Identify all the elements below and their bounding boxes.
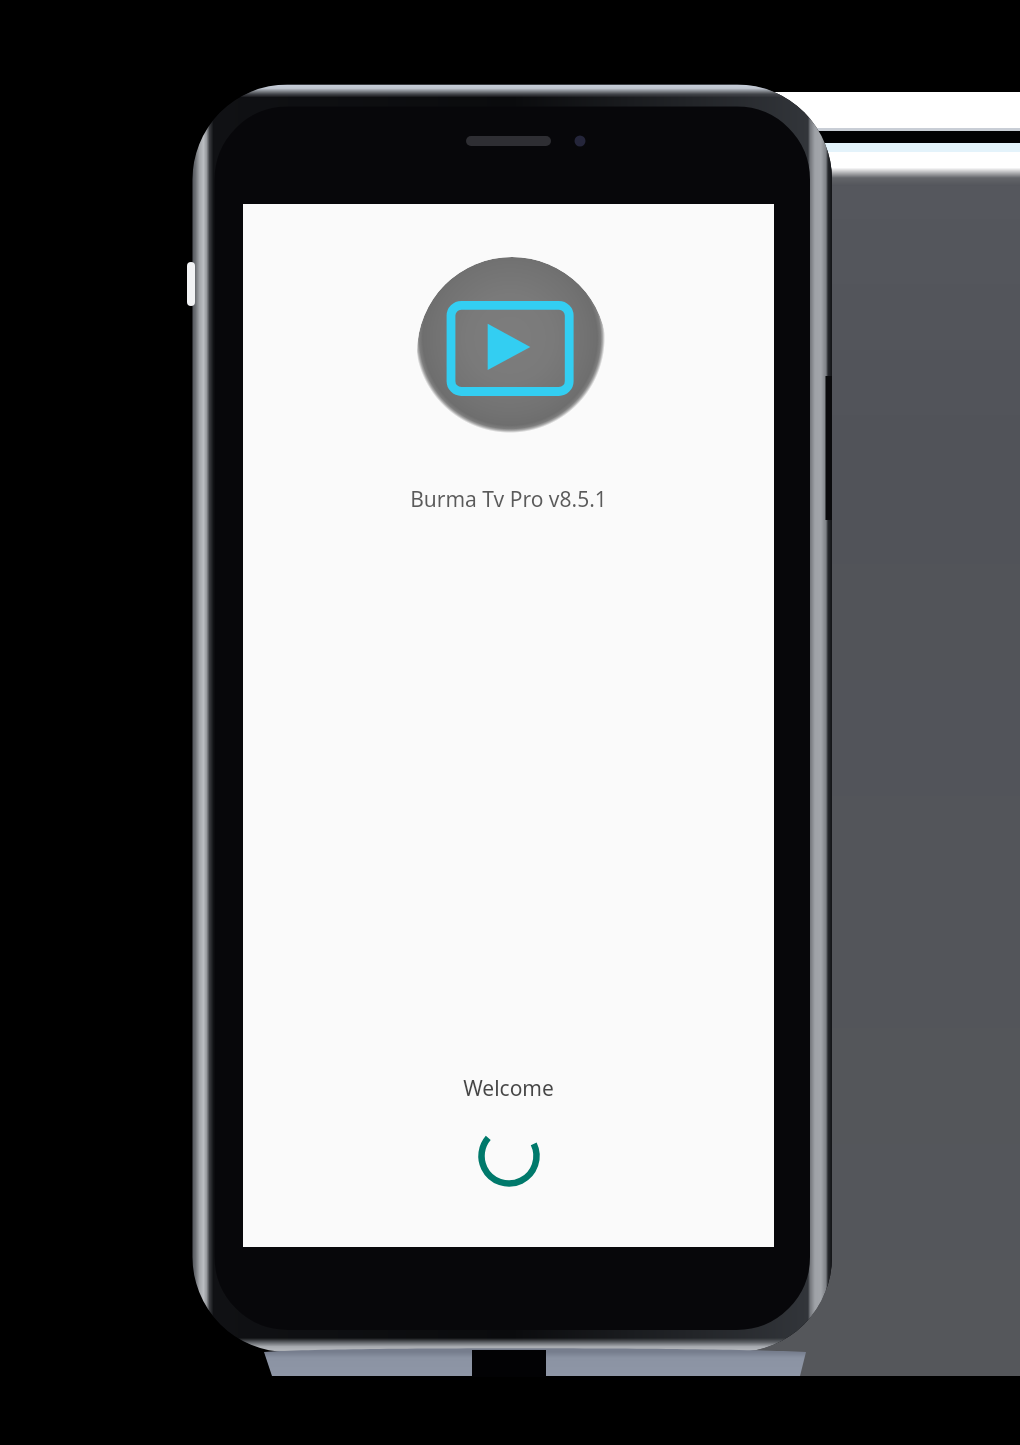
button[interactable]: Burma Tv Pro logo [417, 257, 607, 447]
staticText: Welcome [463, 1074, 554, 1103]
other: Loading [478, 1125, 540, 1187]
staticText: Burma Tv Pro v8.5.1 [410, 485, 607, 514]
